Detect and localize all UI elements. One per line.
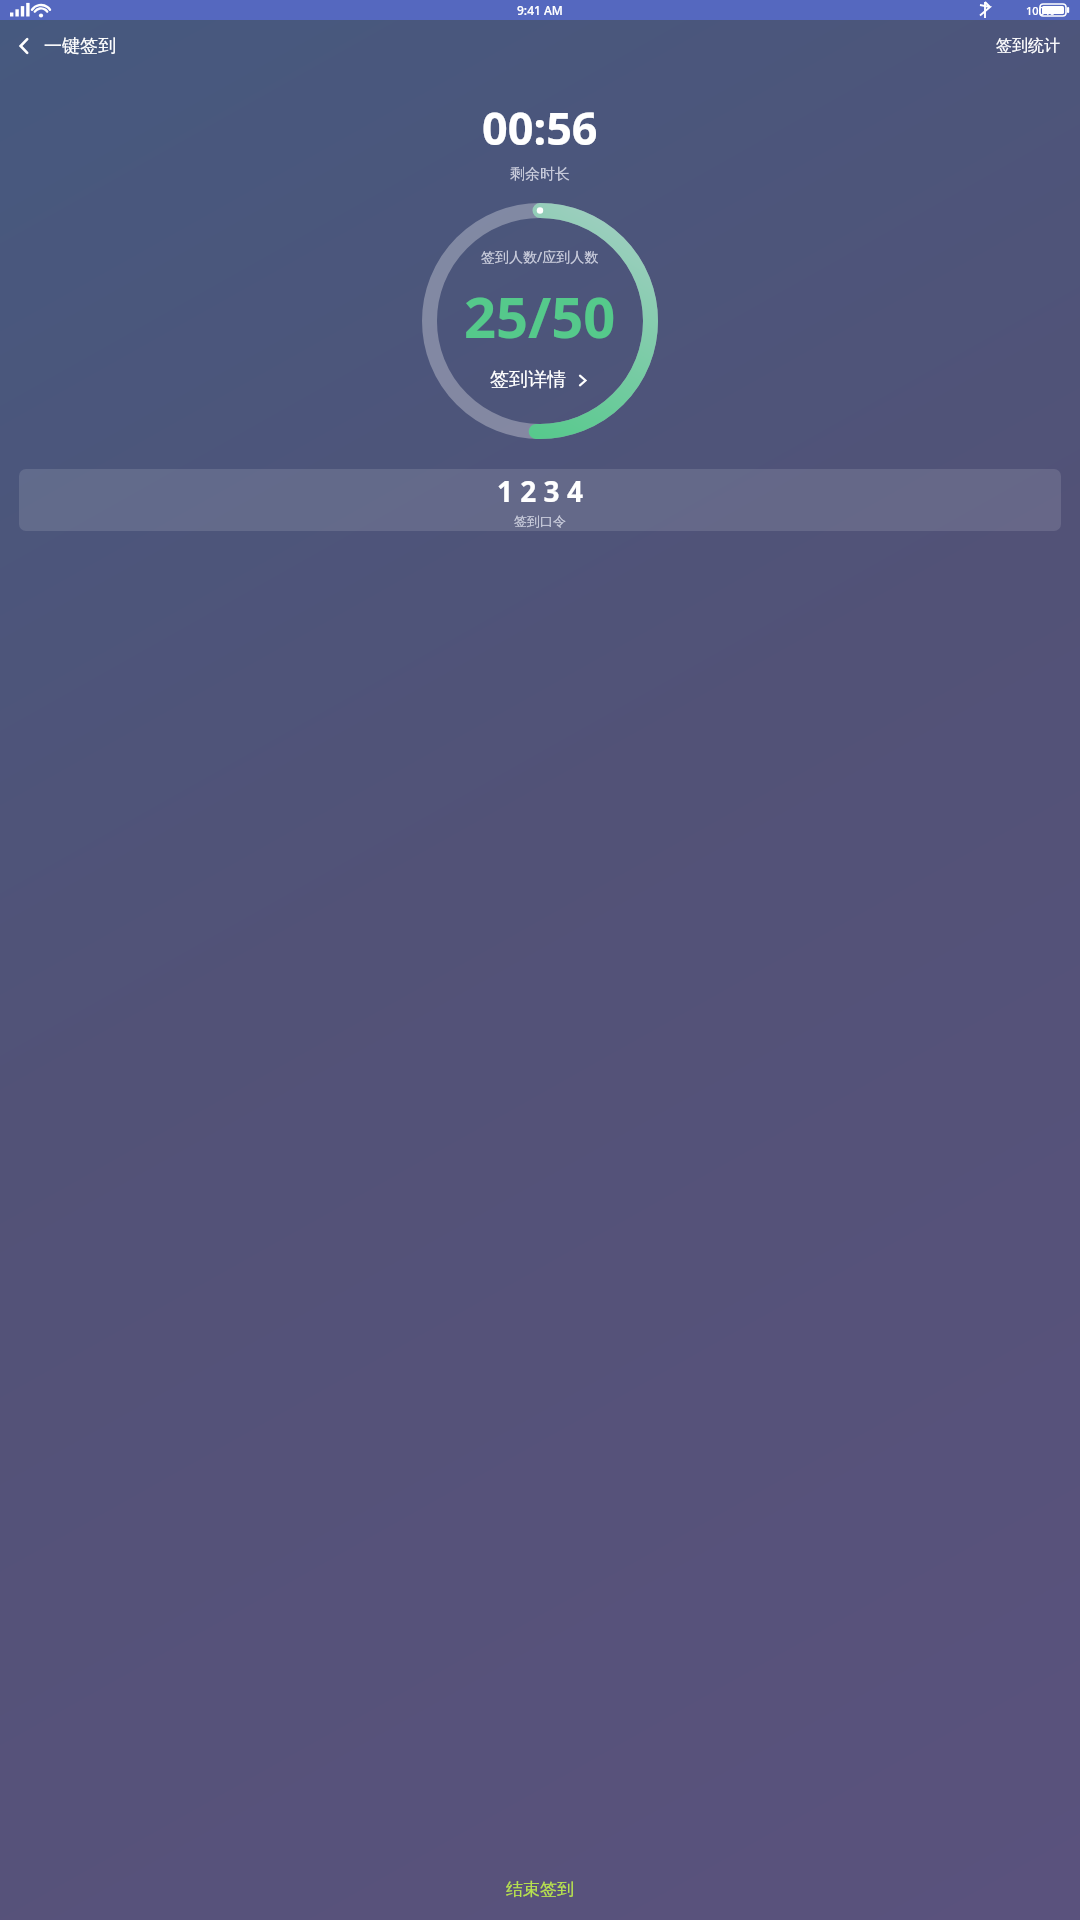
button[interactable]: 结束签到 [0, 1858, 1080, 1920]
staticText: 100% [1026, 3, 1055, 18]
staticText: 1 2 3 4 [497, 472, 583, 510]
button[interactable]: 签到详情 [482, 364, 598, 396]
staticText: 签到人数/应到人数 [481, 247, 599, 266]
staticText: 9:41 AM [517, 2, 563, 18]
button[interactable]: Back [0, 20, 126, 72]
staticText: 结束签到 [506, 1879, 574, 1900]
staticText: 一键签到 [44, 35, 116, 58]
staticText: 剩余时长 [510, 165, 570, 184]
staticText: 签到详情 [490, 368, 566, 392]
staticText: 签到统计 [996, 36, 1060, 56]
staticText: 签到口令 [514, 513, 566, 529]
button[interactable]: 签到统计 [976, 20, 1080, 72]
staticText: 25/50 [464, 278, 616, 354]
staticText: 00:56 [482, 97, 598, 158]
other: Back [14, 36, 34, 56]
button[interactable]: 1 2 3 4 [19, 469, 1061, 531]
